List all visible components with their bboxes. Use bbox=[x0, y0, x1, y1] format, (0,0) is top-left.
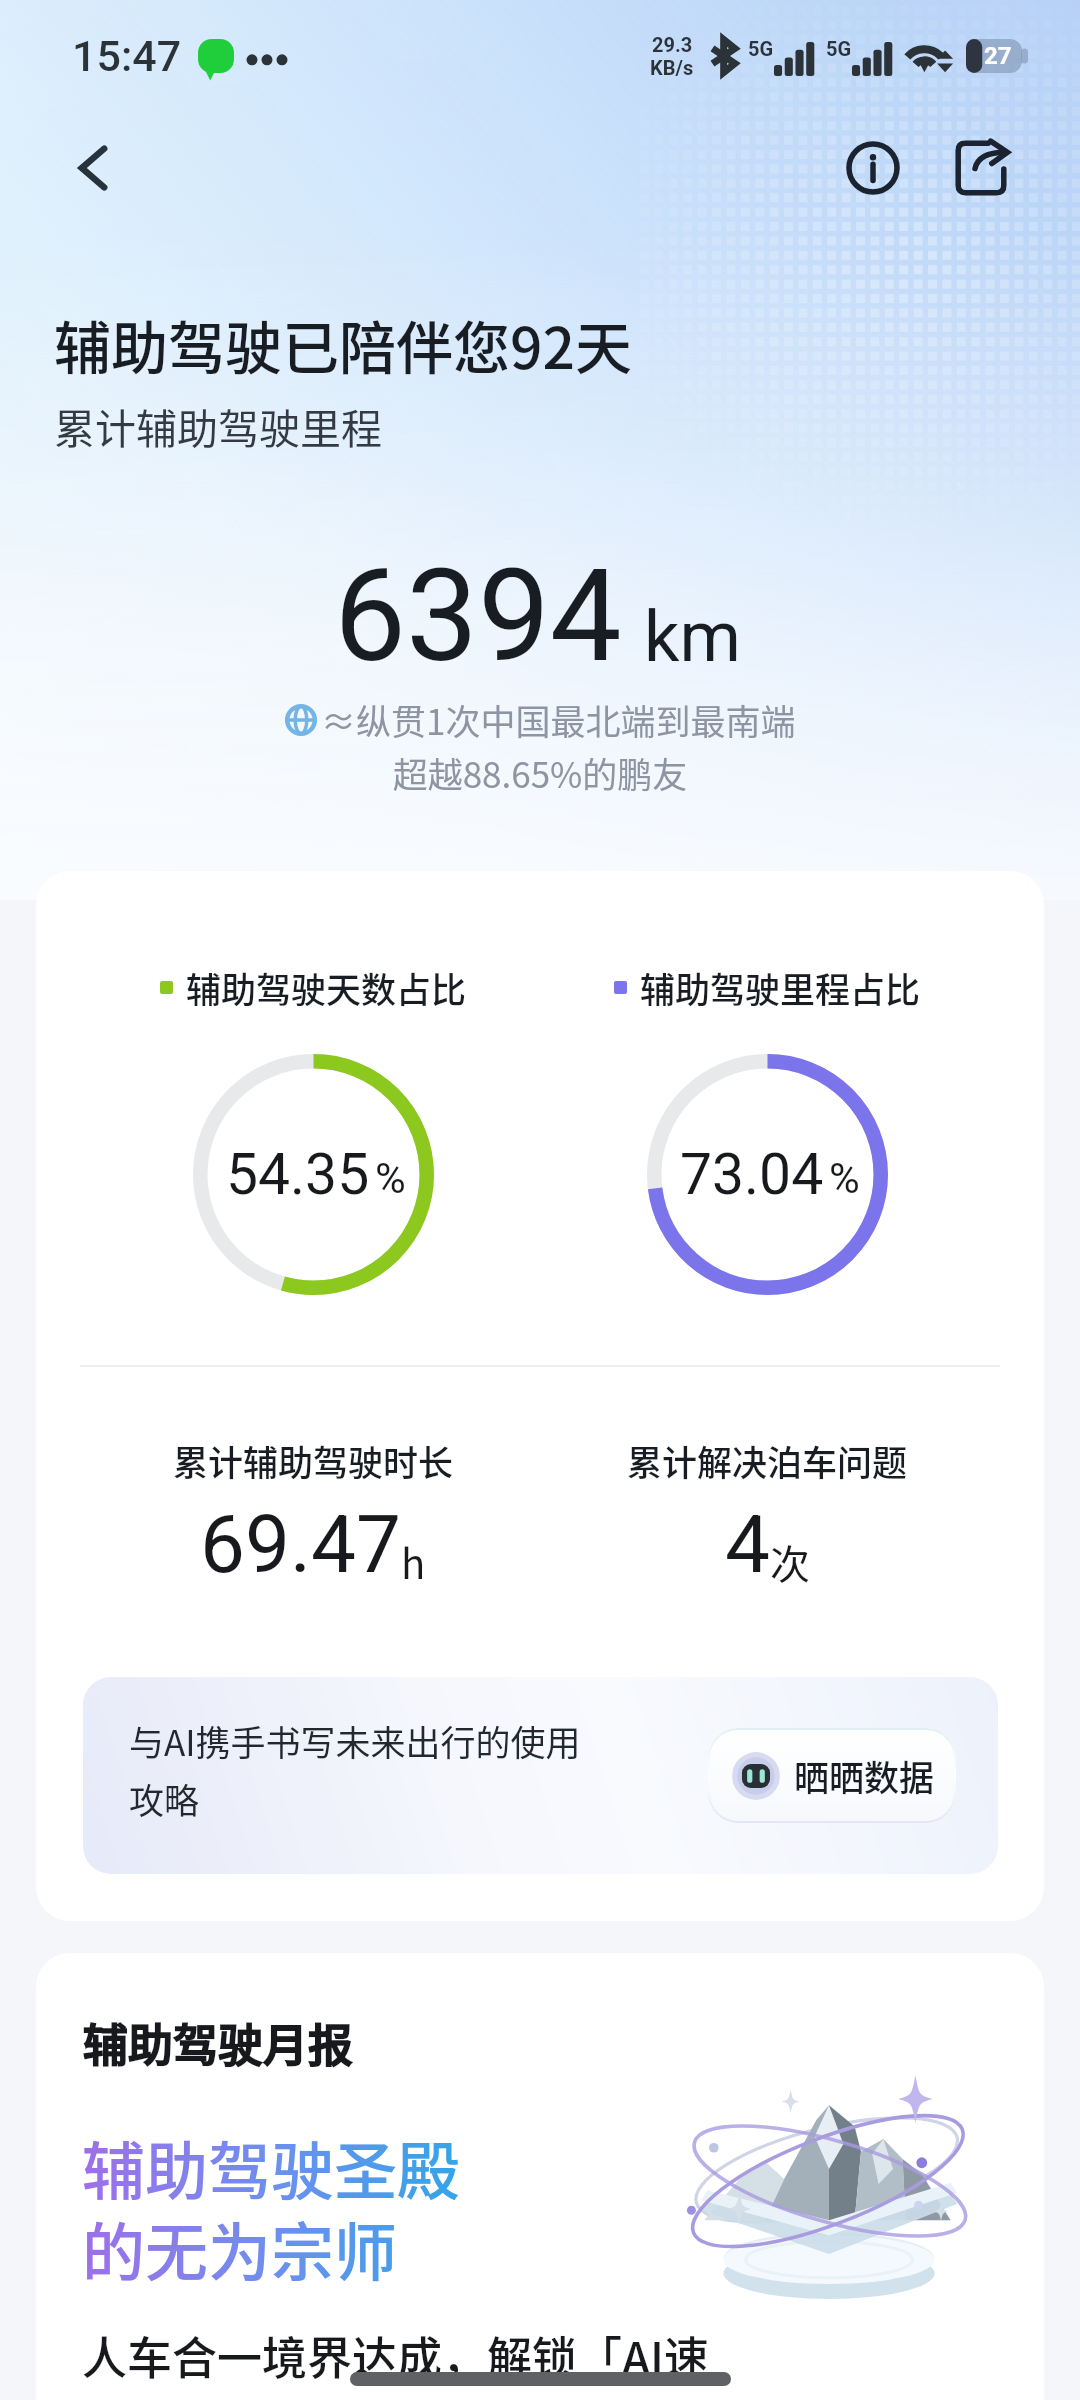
staticText: 累计解决泊车问题 bbox=[627, 1435, 908, 1486]
staticText: ≈纵贯1次中国最北端到最南端 bbox=[321, 694, 796, 745]
staticText: 人车合一境界达成，解锁「AI速 bbox=[82, 2323, 709, 2388]
staticText: % bbox=[829, 1154, 860, 1203]
staticText: % bbox=[375, 1154, 406, 1203]
staticText: 辅助驾驶天数占比 bbox=[186, 962, 467, 1013]
button[interactable]: Info bbox=[830, 125, 916, 211]
button[interactable]: 与AI携手书写未来出行的使用 攻略 bbox=[83, 1677, 998, 1874]
staticText: 辅助驾驶已陪伴您92天 bbox=[54, 303, 632, 386]
staticText: km bbox=[644, 596, 741, 678]
staticText: 次 bbox=[770, 1533, 810, 1591]
staticText: h bbox=[401, 1533, 426, 1591]
staticText: 超越88.65%的鹏友 bbox=[0, 747, 1080, 798]
staticText: 15:47 bbox=[72, 31, 182, 81]
staticText: 27 bbox=[984, 42, 1012, 70]
staticText: 4 bbox=[725, 1498, 770, 1592]
staticText: 5G bbox=[826, 37, 852, 60]
staticText: KB/s bbox=[650, 56, 694, 79]
button[interactable]: Back bbox=[53, 128, 133, 208]
staticText: 累计辅助驾驶里程 bbox=[54, 396, 382, 455]
staticText: 6394 bbox=[334, 541, 622, 691]
staticText: 辅助驾驶月报 bbox=[82, 2011, 353, 2076]
staticText: 累计辅助驾驶时长 bbox=[173, 1435, 454, 1486]
staticText: 29.3 bbox=[652, 33, 693, 56]
staticText: 54.35 bbox=[226, 1141, 370, 1208]
staticText: 5G bbox=[748, 37, 774, 60]
staticText: 与AI携手书写未来出行的使用 攻略 bbox=[129, 1715, 581, 1824]
button[interactable]: Share bbox=[938, 125, 1024, 211]
staticText: 辅助驾驶圣殿 的无为宗师 bbox=[82, 2121, 460, 2293]
staticText: 辅助驾驶里程占比 bbox=[640, 962, 921, 1013]
staticText: 69.47 bbox=[200, 1498, 401, 1592]
staticText: 73.04 bbox=[680, 1141, 824, 1208]
button[interactable]: 晒晒数据 bbox=[708, 1728, 956, 1823]
staticText: 晒晒数据 bbox=[794, 1750, 935, 1801]
